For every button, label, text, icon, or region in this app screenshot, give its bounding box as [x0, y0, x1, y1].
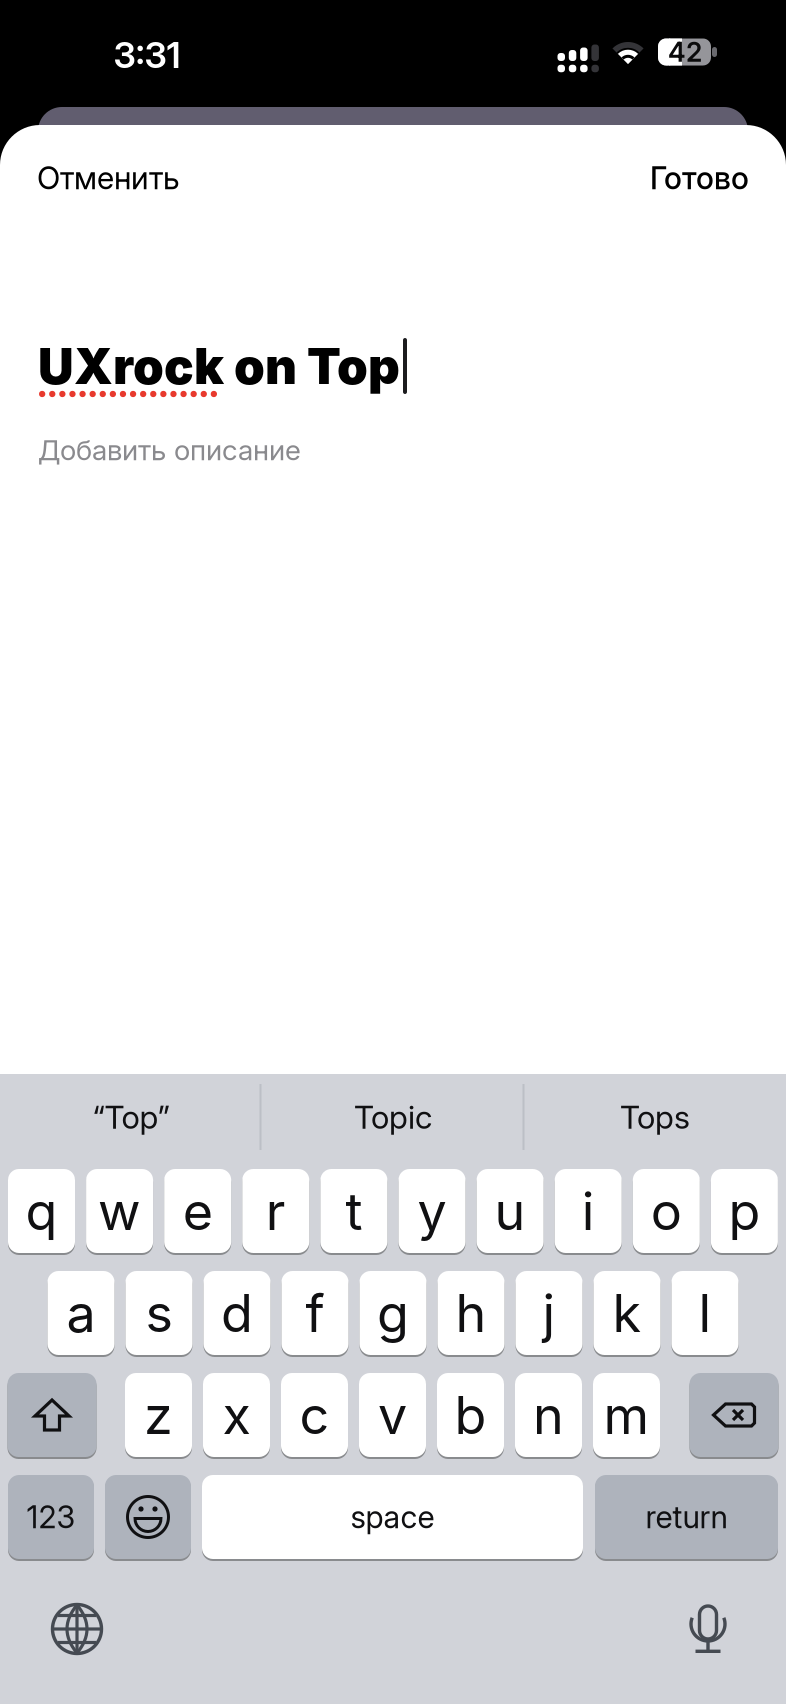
staticText: m [603, 1384, 649, 1446]
button[interactable]: v [359, 1372, 426, 1458]
staticText: return [645, 1499, 727, 1535]
button[interactable]: Emoji [105, 1474, 191, 1560]
button[interactable]: h [437, 1270, 504, 1356]
button[interactable]: “Top” [11, 1075, 251, 1159]
staticText: space [350, 1499, 434, 1535]
staticText: q [25, 1180, 57, 1242]
staticText: c [299, 1384, 329, 1446]
staticText: a [66, 1282, 95, 1344]
staticText: w [98, 1180, 141, 1242]
staticText: Готово [650, 160, 749, 196]
button[interactable]: j [515, 1270, 582, 1356]
button[interactable]: z [125, 1372, 192, 1458]
staticText: Добавить описание [38, 433, 301, 466]
button[interactable]: n [515, 1372, 582, 1458]
button[interactable]: Topic [273, 1075, 513, 1159]
button[interactable]: a [47, 1270, 114, 1356]
button[interactable]: k [593, 1270, 660, 1356]
staticText: y [417, 1180, 446, 1242]
staticText: b [454, 1384, 486, 1446]
staticText: x [222, 1384, 250, 1446]
button[interactable]: s [125, 1270, 192, 1356]
staticText: r [266, 1180, 286, 1242]
button[interactable]: space [202, 1474, 583, 1560]
button[interactable]: c [281, 1372, 348, 1458]
staticText: f [305, 1282, 324, 1344]
button[interactable]: t [320, 1168, 387, 1254]
staticText: 123 [26, 1499, 75, 1535]
button[interactable]: Dictate [682, 1603, 733, 1653]
staticText: o [651, 1180, 682, 1242]
button[interactable]: Готово [650, 160, 749, 196]
staticText: v [378, 1384, 407, 1446]
staticText: Topic [354, 1098, 432, 1136]
button[interactable]: d [203, 1270, 270, 1356]
button[interactable]: f [281, 1270, 348, 1356]
staticText: s [145, 1282, 172, 1344]
button[interactable]: Numbers [8, 1474, 94, 1560]
staticText: 3:31 [113, 34, 180, 76]
staticText: UXrock on Top [38, 337, 400, 395]
staticText: l [698, 1282, 711, 1344]
staticText: n [533, 1384, 564, 1446]
button[interactable]: u [477, 1168, 544, 1254]
staticText: k [612, 1282, 641, 1344]
button[interactable]: p [711, 1168, 778, 1254]
button[interactable]: y [398, 1168, 465, 1254]
staticText: e [183, 1180, 213, 1242]
staticText: t [345, 1180, 362, 1242]
staticText: d [221, 1282, 253, 1344]
button[interactable]: Delete [689, 1372, 778, 1458]
staticText: h [455, 1282, 486, 1344]
staticText: i [582, 1180, 595, 1242]
button[interactable]: e [164, 1168, 231, 1254]
staticText: g [377, 1282, 409, 1344]
staticText: p [728, 1180, 760, 1242]
staticText: Отменить [37, 160, 180, 196]
staticText: z [144, 1384, 173, 1446]
staticText: u [495, 1180, 526, 1242]
button[interactable]: Tops [535, 1075, 775, 1159]
button[interactable]: i [555, 1168, 622, 1254]
staticText: j [542, 1282, 555, 1344]
button[interactable]: l [671, 1270, 738, 1356]
button[interactable]: o [633, 1168, 700, 1254]
button[interactable]: w [86, 1168, 153, 1254]
button[interactable]: q [8, 1168, 75, 1254]
button[interactable]: Отменить [37, 160, 180, 196]
button[interactable]: g [359, 1270, 426, 1356]
staticText: 42 [668, 36, 702, 68]
button[interactable]: Shift [7, 1372, 96, 1458]
staticText: Tops [620, 1098, 690, 1136]
button[interactable]: x [203, 1372, 270, 1458]
staticText: “Top” [92, 1098, 169, 1136]
button[interactable]: r [242, 1168, 309, 1254]
button[interactable]: Next keyboard [52, 1604, 101, 1653]
button[interactable]: m [593, 1372, 660, 1458]
button[interactable]: return [595, 1474, 778, 1560]
button[interactable]: b [437, 1372, 504, 1458]
